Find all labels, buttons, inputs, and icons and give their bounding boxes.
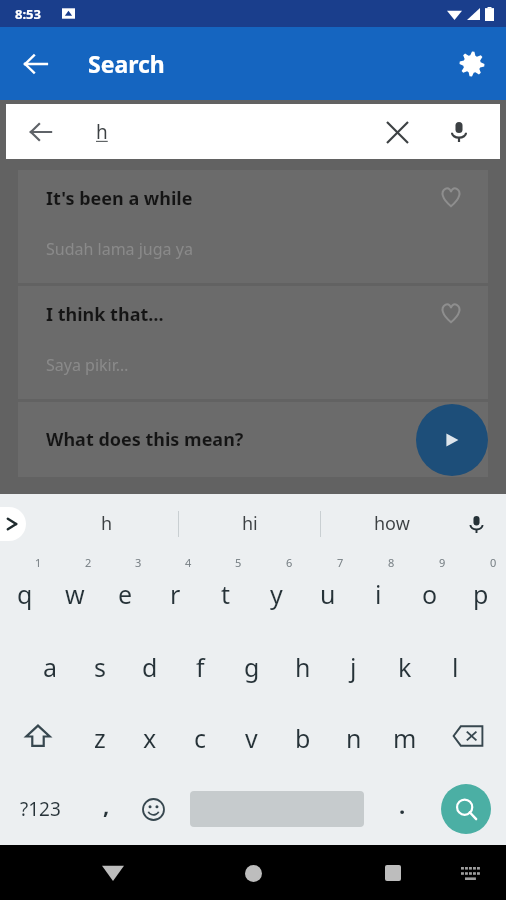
staticText: b (295, 721, 311, 755)
button[interactable]: Settings (448, 40, 496, 88)
button[interactable]: l (430, 626, 481, 699)
button[interactable]: . (380, 783, 424, 835)
button[interactable]: d (125, 626, 175, 699)
button[interactable]: c (175, 699, 226, 772)
button[interactable]: g (226, 626, 277, 699)
button[interactable]: h (36, 494, 178, 553)
staticText: j (350, 650, 357, 684)
staticText: e (118, 577, 133, 611)
button[interactable]: v (226, 699, 277, 772)
button[interactable]: p (455, 553, 506, 626)
staticText: g (244, 650, 260, 684)
button[interactable]: f (175, 626, 226, 699)
button[interactable]: q (0, 553, 50, 626)
staticText: f (196, 650, 205, 684)
button[interactable]: u (302, 553, 353, 626)
staticText: s (94, 650, 106, 684)
button[interactable]: I think that… (18, 286, 488, 399)
button[interactable]: hi (179, 494, 320, 553)
button[interactable]: x (125, 699, 175, 772)
button[interactable]: What does this mean? (18, 402, 488, 477)
staticText: 5 (235, 555, 242, 570)
staticText: h (101, 511, 113, 536)
staticText: x (143, 721, 157, 755)
staticText: 8 (388, 555, 395, 570)
button[interactable]: It's been a while (18, 170, 488, 283)
button[interactable]: , (84, 783, 128, 835)
button[interactable]: o (404, 553, 455, 626)
button[interactable]: Back (20, 111, 62, 153)
button[interactable]: b (277, 699, 328, 772)
staticText: Saya pikir… (46, 354, 129, 376)
button[interactable]: h (277, 626, 328, 699)
staticText: I think that… (46, 302, 164, 327)
staticText: 1 (35, 555, 42, 570)
staticText: t (221, 577, 231, 611)
button[interactable]: w (50, 553, 100, 626)
staticText: ?123 (20, 796, 61, 822)
button[interactable]: Favorite (434, 180, 468, 214)
staticText: q (17, 577, 33, 611)
button[interactable]: Shift (0, 699, 75, 772)
staticText: hi (242, 511, 258, 536)
button[interactable]: Back (6, 104, 500, 159)
button[interactable]: r (150, 553, 200, 626)
button[interactable]: Home (230, 850, 276, 896)
staticText: v (245, 721, 258, 755)
staticText: how (374, 511, 410, 536)
button[interactable]: Clear (376, 111, 418, 153)
staticText: Search (88, 48, 165, 79)
button[interactable]: Recents (370, 850, 416, 896)
staticText: 9 (439, 555, 446, 570)
staticText: l (452, 650, 459, 684)
button[interactable]: m (379, 699, 430, 772)
button[interactable]: a (25, 626, 75, 699)
staticText: 6 (286, 555, 293, 570)
staticText: r (170, 577, 181, 611)
button[interactable]: how (321, 494, 462, 553)
button[interactable]: ?123 (6, 783, 74, 835)
staticText: c (194, 721, 207, 755)
staticText: y (270, 577, 283, 611)
button[interactable]: Expand suggestions (0, 507, 26, 541)
button[interactable]: Search (441, 784, 491, 834)
staticText: u (320, 577, 336, 611)
button[interactable]: n (328, 699, 379, 772)
staticText: 2 (85, 555, 92, 570)
button[interactable]: Play (416, 404, 488, 476)
staticText: z (94, 721, 106, 755)
staticText: k (398, 650, 412, 684)
button[interactable]: Switch keyboard (451, 853, 491, 893)
staticText: h (295, 650, 311, 684)
staticText: p (473, 577, 489, 611)
staticText: h (96, 119, 108, 145)
button[interactable]: Backspace (430, 699, 506, 772)
staticText: m (393, 721, 417, 755)
button[interactable]: Back (12, 40, 60, 88)
staticText: d (142, 650, 158, 684)
button[interactable]: k (379, 626, 430, 699)
button[interactable]: s (75, 626, 125, 699)
staticText: What does this mean? (46, 427, 244, 452)
button[interactable]: i (353, 553, 404, 626)
button[interactable]: e (100, 553, 150, 626)
button[interactable]: t (200, 553, 251, 626)
staticText: , (103, 790, 110, 820)
staticText: . (399, 790, 406, 820)
staticText: It's been a while (46, 186, 193, 211)
staticText: o (422, 577, 438, 611)
staticText: Sudah lama juga ya (46, 238, 193, 260)
button[interactable]: Favorite (434, 296, 468, 330)
staticText: n (346, 721, 362, 755)
button[interactable]: Voice search (438, 111, 480, 153)
button[interactable]: z (75, 699, 125, 772)
staticText: i (375, 577, 382, 611)
button[interactable]: Emoji (131, 783, 175, 835)
button[interactable]: Voice input (456, 504, 496, 544)
staticText: w (65, 577, 85, 611)
button[interactable]: Back (90, 850, 136, 896)
button[interactable]: j (328, 626, 379, 699)
button[interactable]: y (251, 553, 302, 626)
staticText: 4 (185, 555, 192, 570)
